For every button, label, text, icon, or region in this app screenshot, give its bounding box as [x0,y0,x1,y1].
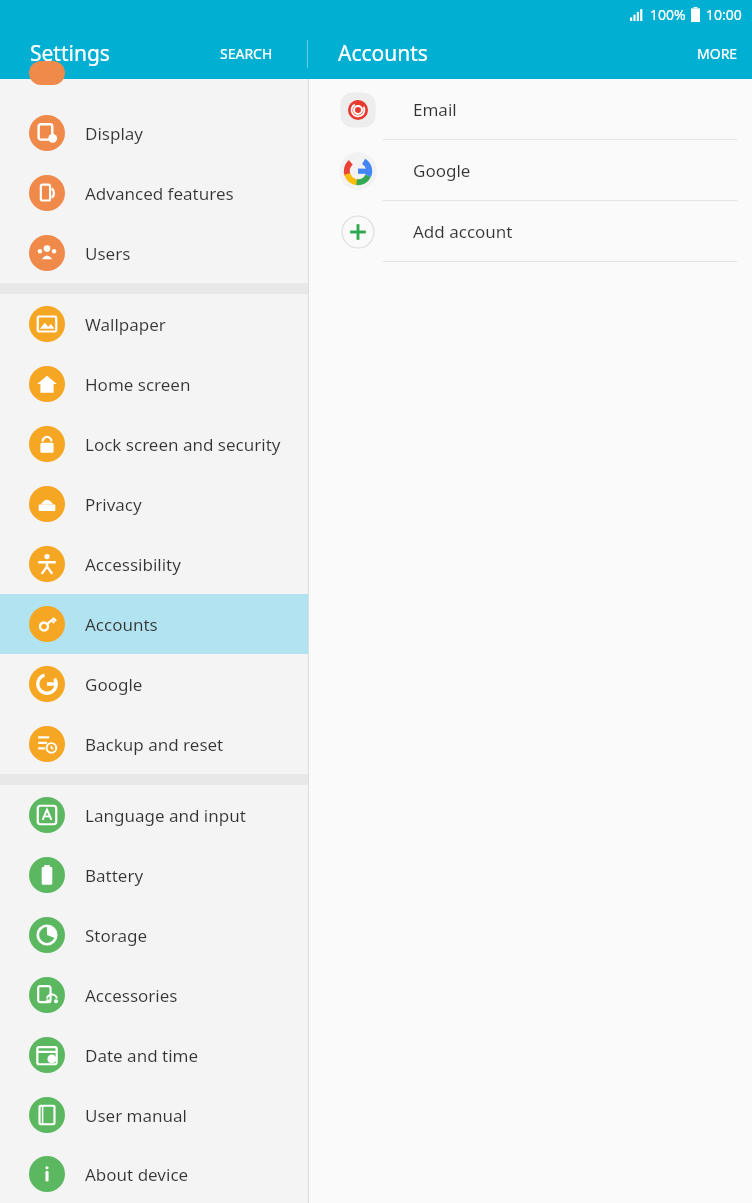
staticText: 10:00 [706,5,742,24]
button[interactable]: Privacy [0,474,308,534]
button[interactable]: Battery [0,845,308,905]
staticText: About device [85,1163,189,1186]
button[interactable]: Advanced features [0,163,308,223]
button[interactable]: Accessibility [0,534,308,594]
staticText: Accounts [338,39,428,68]
staticText: Privacy [85,493,142,516]
staticText: 100% [650,5,686,24]
staticText: User manual [85,1104,187,1127]
staticText: Wallpaper [85,313,166,336]
button[interactable]: Add account [309,201,752,262]
staticText: Accessories [85,984,178,1007]
button[interactable]: Language and input [0,785,308,845]
button[interactable]: Wallpaper [0,294,308,354]
staticText: SEARCH [220,44,273,63]
button[interactable]: Accounts [0,594,308,654]
staticText: Settings [30,39,110,68]
staticText: Display [85,122,143,145]
button[interactable]: About device [0,1145,308,1203]
button[interactable]: Users [0,223,308,283]
button[interactable]: Accessories [0,965,308,1025]
button[interactable]: Home screen [0,354,308,414]
staticText: Google [413,159,471,182]
staticText: Advanced features [85,182,234,205]
button[interactable]: Storage [0,905,308,965]
button[interactable]: Email [309,79,752,140]
button[interactable]: SEARCH [206,32,287,75]
staticText: Storage [85,924,148,947]
staticText: Accounts [85,613,158,636]
staticText: Lock screen and security [85,433,281,456]
staticText: MORE [697,44,738,63]
staticText: Date and time [85,1044,199,1067]
staticText: Backup and reset [85,733,224,756]
button[interactable]: Google [0,654,308,714]
button[interactable]: Google [309,140,752,201]
staticText: Accessibility [85,553,181,576]
button[interactable]: Date and time [0,1025,308,1085]
button[interactable]: More options [683,32,752,75]
button[interactable]: Display [0,103,308,163]
button[interactable]: Backup and reset [0,714,308,774]
staticText: Email [413,98,457,121]
staticText: Users [85,242,131,265]
staticText: Google [85,673,143,696]
staticText: Battery [85,864,144,887]
staticText: Add account [413,220,513,243]
staticText: Home screen [85,373,191,396]
button[interactable]: Lock screen and security [0,414,308,474]
staticText: Language and input [85,804,246,827]
button[interactable]: User manual [0,1085,308,1145]
